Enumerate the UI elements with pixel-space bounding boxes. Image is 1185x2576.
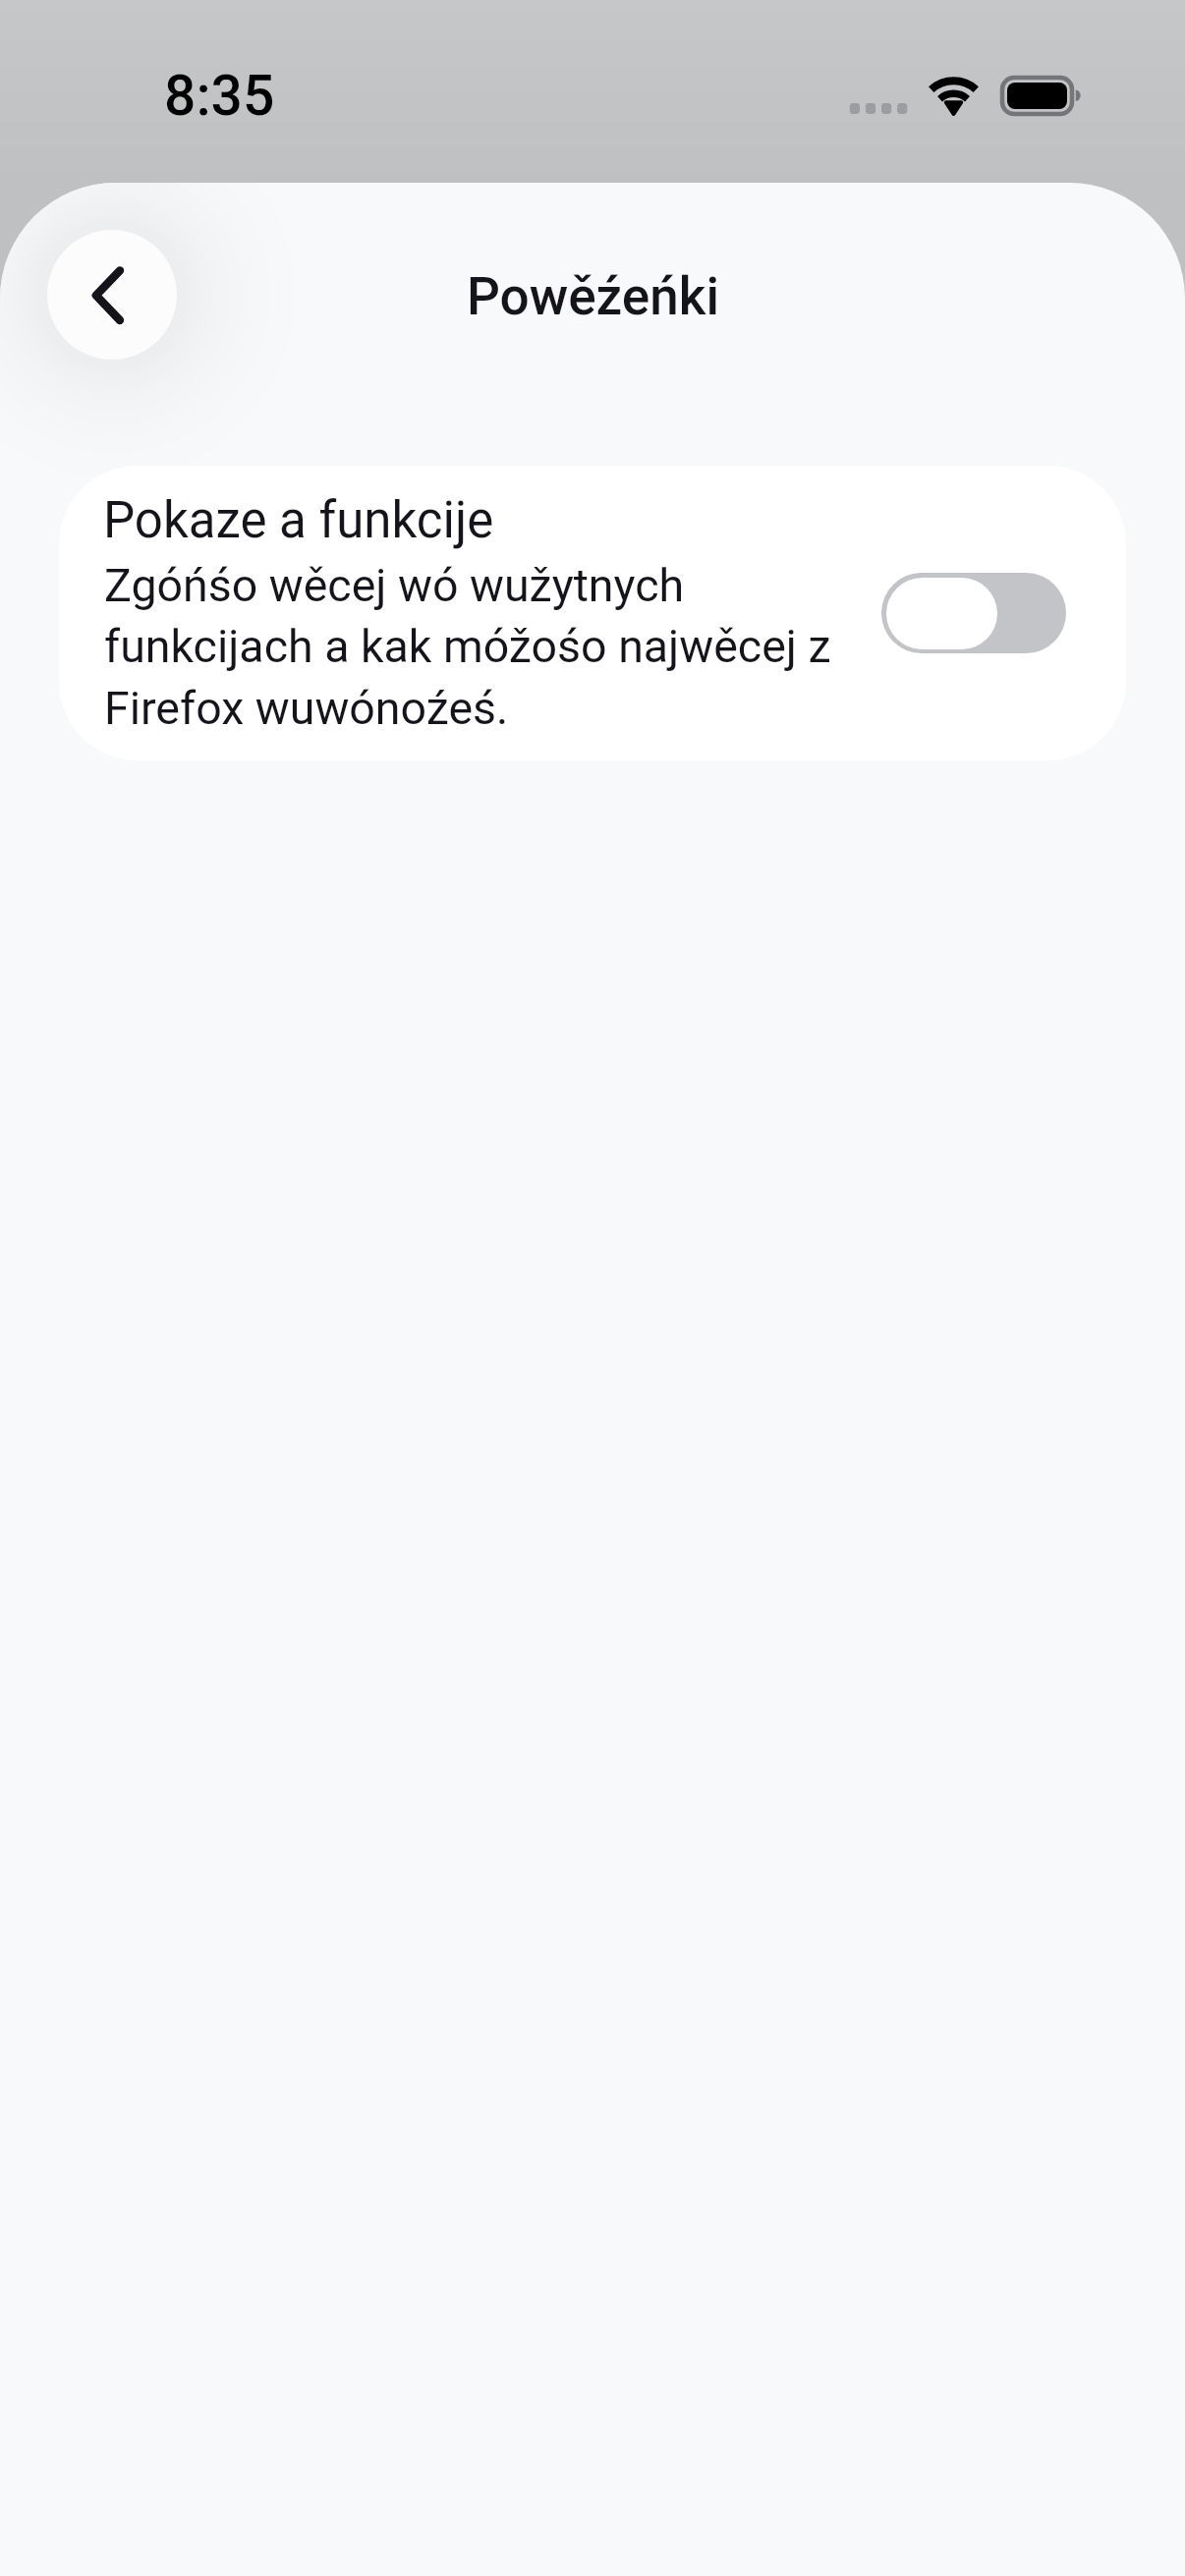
staticText: Pokaze a funkcije — [103, 491, 494, 550]
staticText: Powěźeńki — [467, 266, 719, 327]
button[interactable]: Back — [47, 230, 177, 360]
staticText: 8:35 — [164, 63, 275, 129]
staticText: Zgóńśo wěcej wó wužytnych funkcijach a k… — [104, 559, 871, 736]
button[interactable]: Toggle shortcuts — [881, 573, 1066, 653]
button[interactable]: Pokaze a funkcije — [59, 466, 1126, 760]
